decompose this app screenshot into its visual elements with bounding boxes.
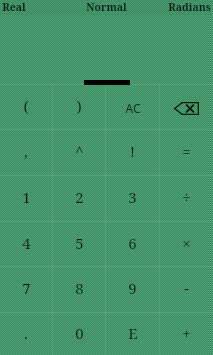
button[interactable]: 1 [0,175,52,221]
staticText: 9 [128,278,137,298]
staticText: = [182,141,191,161]
button[interactable]: ÷ [160,175,213,221]
staticText: E [128,323,138,343]
button[interactable]: 9 [106,266,159,312]
button[interactable]: E [106,312,159,355]
staticText: - [184,278,189,298]
staticText: 3 [128,187,137,207]
button[interactable]: = [160,129,213,175]
staticText: 5 [75,233,84,253]
button[interactable] [0,15,213,84]
staticText: ÷ [182,187,191,207]
staticText: , [24,141,28,161]
button[interactable]: 3 [106,175,159,221]
button[interactable]: Real [2,0,71,15]
staticText: ^ [75,141,84,161]
staticText: Radians [168,0,211,14]
button[interactable]: + [160,312,213,355]
staticText: 4 [22,233,31,253]
button[interactable]: ) [53,84,105,129]
button[interactable]: - [160,266,213,312]
button[interactable]: × [160,221,213,266]
button[interactable]: ^ [53,129,105,175]
staticText: 8 [75,278,84,298]
button[interactable]: 6 [106,221,159,266]
staticText: 2 [75,187,84,207]
staticText: 1 [22,187,31,207]
button[interactable]: ( [0,84,52,129]
button[interactable]: Normal [71,0,141,15]
button[interactable]: ! [106,129,159,175]
staticText: ( [23,96,29,116]
button[interactable]: 5 [53,221,105,266]
button[interactable]: . [0,312,52,355]
staticText: + [182,323,191,343]
button[interactable]: Radians [141,0,211,15]
button[interactable]: , [0,129,52,175]
staticText: 7 [22,278,31,298]
other: Backspace [174,102,199,115]
button[interactable]: 4 [0,221,52,266]
staticText: . [24,323,28,343]
staticText: × [182,233,191,253]
staticText: ! [130,141,135,161]
staticText: Normal [86,0,127,14]
staticText: ) [76,96,82,116]
button[interactable]: AC [106,84,159,129]
staticText: AC [125,100,141,116]
button[interactable]: 0 [53,312,105,355]
button[interactable]: 7 [0,266,52,312]
button[interactable]: 2 [53,175,105,221]
button[interactable]: Backspace [160,84,213,129]
button[interactable]: 8 [53,266,105,312]
staticText: 6 [128,233,137,253]
staticText: Real [2,0,26,14]
staticText: 0 [75,323,84,343]
